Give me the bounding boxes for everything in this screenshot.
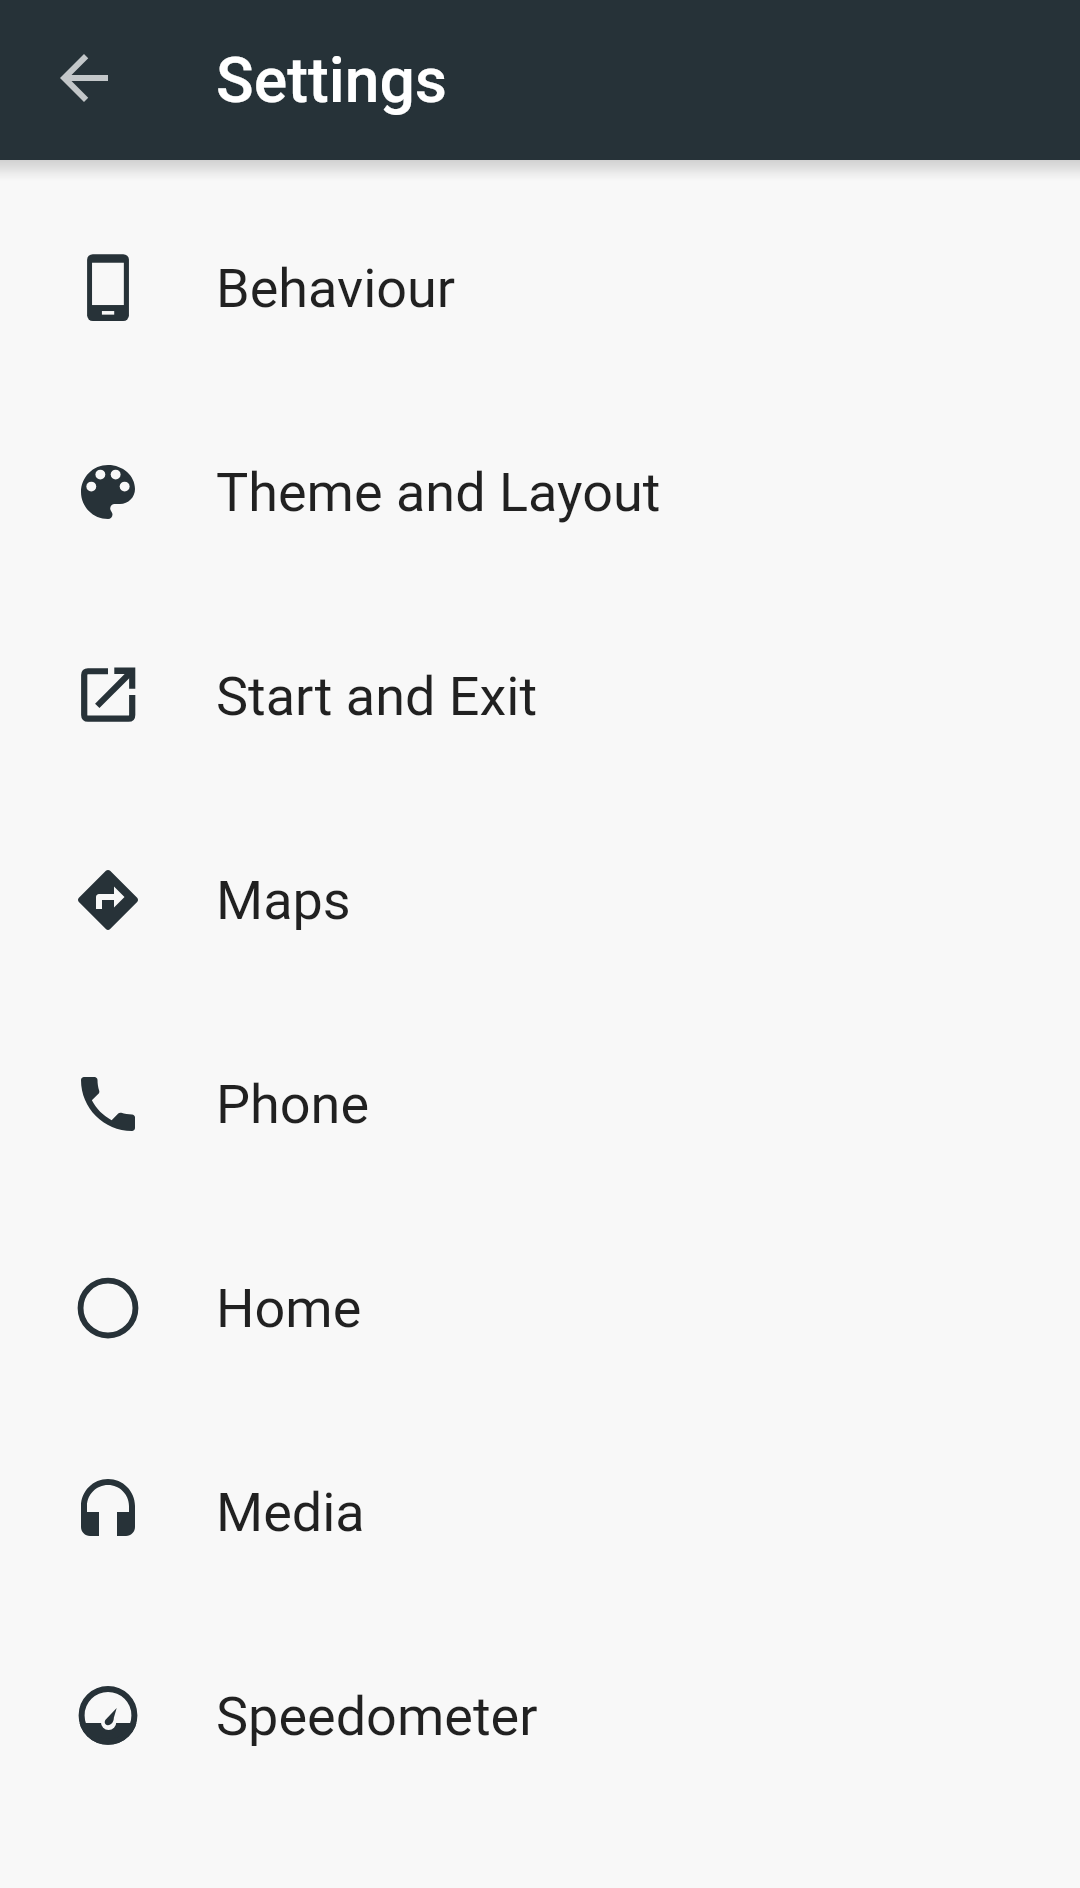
button[interactable]: Home (0, 1206, 1080, 1410)
staticText: Speedometer (216, 1685, 538, 1748)
staticText: Media (216, 1481, 365, 1544)
button[interactable]: Start and Exit (0, 594, 1080, 798)
button[interactable]: Theme and Layout (0, 390, 1080, 594)
staticText: Phone (216, 1073, 370, 1136)
button[interactable]: Navigate up (12, 8, 156, 152)
staticText: Settings (216, 44, 447, 117)
staticText: Start and Exit (216, 665, 538, 728)
staticText: Behaviour (216, 257, 456, 320)
button[interactable]: Phone (0, 1002, 1080, 1206)
staticText: Theme and Layout (216, 461, 661, 524)
staticText: Home (216, 1277, 362, 1340)
button[interactable]: Speedometer (0, 1614, 1080, 1818)
staticText: Maps (216, 869, 351, 932)
button[interactable]: Behaviour (0, 186, 1080, 390)
button[interactable]: Maps (0, 798, 1080, 1002)
button[interactable]: Media (0, 1410, 1080, 1614)
